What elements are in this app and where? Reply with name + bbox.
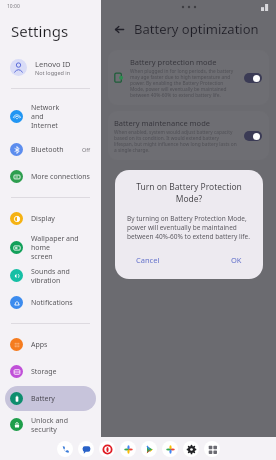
staticText: Bluetooth xyxy=(31,145,82,155)
button[interactable]: OK xyxy=(222,252,251,268)
staticText: By turning on Battery Protection Mode, p… xyxy=(127,214,251,241)
staticText: Battery xyxy=(31,394,91,404)
button[interactable]: Photos app xyxy=(120,441,136,457)
staticText: Lenovo ID xyxy=(35,59,71,69)
button[interactable]: Wallpaper and home screen xyxy=(5,233,96,261)
button[interactable]: Phone xyxy=(57,441,73,457)
button[interactable]: Battery xyxy=(5,386,96,411)
button[interactable]: Lenovo ID xyxy=(0,53,101,81)
button[interactable]: All apps xyxy=(204,441,220,457)
staticText: Turn on Battery Protection Mode? xyxy=(127,181,251,205)
button[interactable]: Opera xyxy=(99,441,115,457)
staticText: Notifications xyxy=(31,298,91,308)
button[interactable]: Sounds and vibration xyxy=(5,263,96,288)
staticText: Battery maintenance mode xyxy=(114,118,210,128)
button[interactable]: Google Photos xyxy=(162,441,178,457)
staticText: Storage xyxy=(31,367,91,377)
staticText: Unlock and security xyxy=(31,416,91,434)
button[interactable]: More connections xyxy=(5,164,96,189)
staticText: Settings xyxy=(11,21,69,41)
staticText: Cancel xyxy=(136,255,160,265)
staticText: Not logged in xyxy=(35,69,71,76)
button[interactable]: Cancel xyxy=(127,252,169,268)
button[interactable]: Play Store xyxy=(141,441,157,457)
button[interactable]: Battery protection mode xyxy=(108,50,269,105)
staticText: Battery optimization xyxy=(134,20,259,38)
staticText: Battery protection mode xyxy=(130,57,217,67)
staticText: Display xyxy=(31,214,91,224)
staticText: Apps xyxy=(31,340,91,350)
staticText: Network and Internet xyxy=(31,103,91,130)
button[interactable]: Messages xyxy=(78,441,94,457)
staticText: Sounds and vibration xyxy=(31,267,91,285)
staticText: When plugged in for long periods, the ba… xyxy=(130,68,237,98)
staticText: More connections xyxy=(31,172,91,182)
staticText: When enabled, system would adjust batter… xyxy=(114,129,237,153)
button[interactable]: Storage xyxy=(5,359,96,384)
button[interactable]: Network and Internet xyxy=(5,97,96,135)
button[interactable]: Battery maintenance mode xyxy=(108,111,269,160)
button[interactable]: Back xyxy=(109,19,129,39)
button[interactable]: Bluetooth xyxy=(5,137,96,162)
button[interactable]: Display xyxy=(5,206,96,231)
button[interactable]: Unlock and security xyxy=(5,413,96,436)
button[interactable]: Notifications xyxy=(5,290,96,315)
staticText: OK xyxy=(231,255,242,265)
button[interactable]: Settings xyxy=(183,441,199,457)
staticText: Wallpaper and home screen xyxy=(31,234,91,261)
staticText: 10:00 xyxy=(7,3,20,10)
staticText: Off xyxy=(82,146,91,153)
button[interactable]: Apps xyxy=(5,332,96,357)
